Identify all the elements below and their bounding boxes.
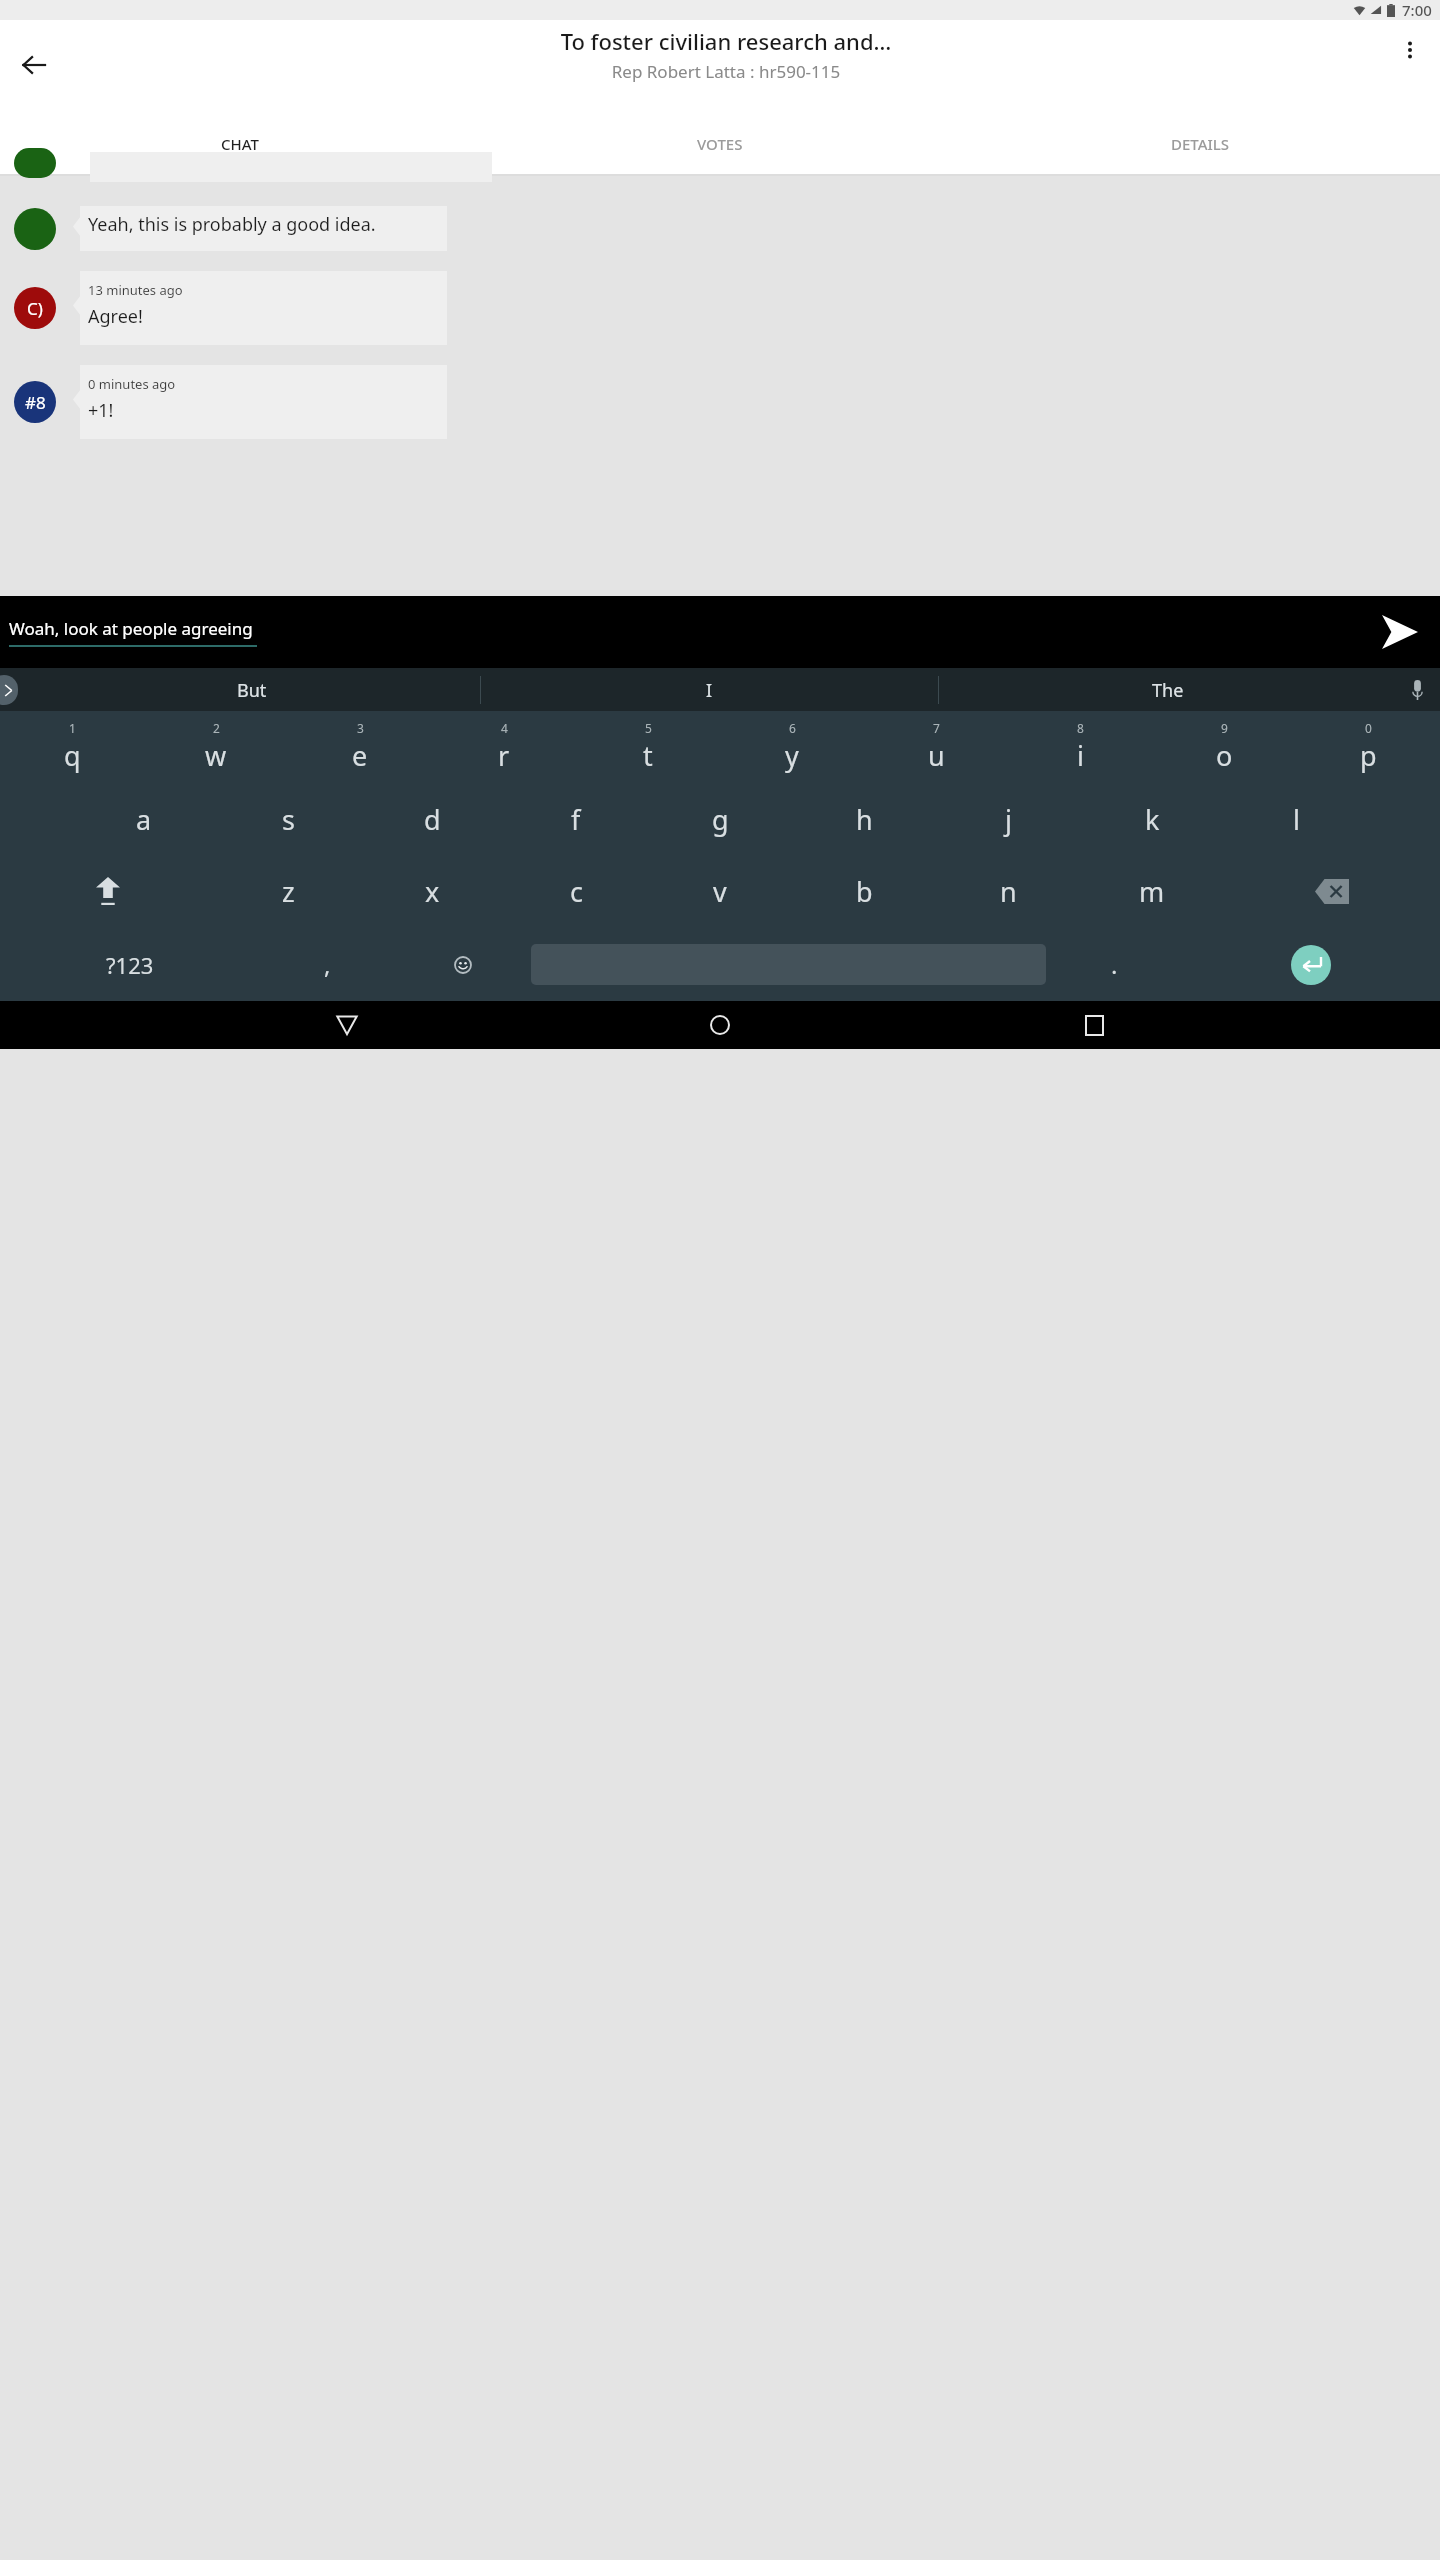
button[interactable]: v bbox=[648, 855, 792, 928]
button[interactable]: Backspace bbox=[1224, 855, 1440, 928]
staticText: e bbox=[352, 737, 368, 774]
button[interactable]: Back bbox=[320, 1001, 374, 1049]
button[interactable]: g bbox=[648, 783, 792, 855]
button[interactable]: 7 bbox=[864, 711, 1008, 783]
button[interactable]: 9 bbox=[1152, 711, 1296, 783]
button[interactable]: 3 bbox=[288, 711, 432, 783]
button[interactable]: Expand suggestions bbox=[0, 675, 18, 705]
button[interactable]: n bbox=[936, 855, 1080, 928]
staticText: 5 bbox=[645, 720, 652, 736]
button[interactable]: Yeah, this is probably a good idea. bbox=[0, 206, 1440, 251]
button[interactable]: Back bbox=[6, 37, 62, 93]
button[interactable]: x bbox=[360, 855, 504, 928]
staticText: CHAT bbox=[221, 134, 259, 154]
button[interactable]: d bbox=[360, 783, 504, 855]
staticText: #8 bbox=[25, 391, 46, 414]
staticText: q bbox=[64, 737, 81, 774]
staticText: 0 minutes ago bbox=[88, 375, 176, 393]
staticText: d bbox=[424, 801, 441, 838]
button[interactable]: The bbox=[939, 678, 1396, 703]
button[interactable]: 2 bbox=[144, 711, 288, 783]
button[interactable]: 4 bbox=[432, 711, 576, 783]
staticText: Woah, look at people agreeing on somethi… bbox=[9, 617, 257, 640]
button[interactable]: f bbox=[504, 783, 648, 855]
button[interactable]: l bbox=[1224, 783, 1368, 855]
button[interactable]: m bbox=[1080, 855, 1224, 928]
button[interactable]: Emoji bbox=[395, 928, 531, 1001]
staticText: 1 bbox=[69, 720, 76, 736]
button[interactable]: ?123 bbox=[0, 928, 259, 1001]
staticText: k bbox=[1145, 801, 1160, 838]
button[interactable]: c bbox=[504, 855, 648, 928]
staticText: y bbox=[785, 737, 799, 774]
button[interactable]: CHAT bbox=[0, 134, 480, 154]
button[interactable]: Voice input bbox=[1400, 673, 1434, 707]
staticText: g bbox=[712, 801, 729, 838]
staticText: 7 bbox=[933, 720, 940, 736]
button[interactable]: 8 bbox=[1008, 711, 1152, 783]
button[interactable]: Recents bbox=[1067, 1001, 1121, 1049]
staticText: t bbox=[643, 737, 653, 774]
button[interactable]: s bbox=[216, 783, 360, 855]
button[interactable]: j bbox=[936, 783, 1080, 855]
staticText: 9 bbox=[1221, 720, 1228, 736]
staticText: 8 bbox=[1077, 720, 1084, 736]
button[interactable]: 5 bbox=[576, 711, 720, 783]
button[interactable]: Shift bbox=[0, 855, 216, 928]
staticText: j bbox=[1005, 801, 1012, 838]
button[interactable]: C) bbox=[0, 271, 1440, 345]
staticText: 4 bbox=[501, 720, 508, 736]
staticText: b bbox=[856, 873, 873, 910]
button[interactable]: a bbox=[72, 783, 216, 855]
staticText: But bbox=[237, 678, 267, 703]
staticText: m bbox=[1139, 873, 1165, 910]
button[interactable]: 0 bbox=[1296, 711, 1440, 783]
staticText: a bbox=[136, 801, 152, 838]
staticText: f bbox=[571, 801, 581, 838]
button[interactable]: 6 bbox=[720, 711, 864, 783]
staticText: 0 bbox=[1365, 720, 1372, 736]
staticText: z bbox=[282, 873, 295, 910]
staticText: , bbox=[324, 948, 331, 981]
staticText: l bbox=[1293, 801, 1300, 838]
staticText: DETAILS bbox=[1171, 134, 1230, 154]
button[interactable]: DETAILS bbox=[960, 134, 1440, 154]
staticText: 2 bbox=[213, 720, 220, 736]
button[interactable]: But bbox=[24, 678, 480, 703]
button[interactable]: h bbox=[792, 783, 936, 855]
button[interactable]: Enter bbox=[1182, 928, 1440, 1001]
staticText: r bbox=[498, 737, 510, 774]
staticText: C) bbox=[27, 297, 43, 320]
staticText: 6 bbox=[789, 720, 796, 736]
button[interactable]: 1 bbox=[0, 711, 144, 783]
staticText: 7:00 bbox=[1402, 0, 1432, 20]
button[interactable]: VOTES bbox=[480, 134, 960, 154]
button[interactable]: z bbox=[216, 855, 360, 928]
button[interactable]: I bbox=[481, 678, 938, 703]
button[interactable]: More options bbox=[1384, 24, 1436, 76]
button[interactable]: b bbox=[792, 855, 936, 928]
button[interactable]: Send bbox=[1372, 604, 1428, 660]
staticText: o bbox=[1216, 737, 1233, 774]
button[interactable]: Home bbox=[693, 1001, 747, 1049]
staticText: i bbox=[1077, 737, 1084, 774]
staticText: VOTES bbox=[697, 134, 743, 154]
staticText: c bbox=[570, 873, 583, 910]
staticText: ?123 bbox=[106, 950, 154, 980]
staticText: 13 minutes ago bbox=[88, 281, 183, 299]
button[interactable]: k bbox=[1080, 783, 1224, 855]
staticText: h bbox=[856, 801, 873, 838]
staticText: w bbox=[205, 737, 227, 774]
button[interactable]: , bbox=[259, 928, 395, 1001]
staticText: The bbox=[1152, 678, 1184, 703]
button[interactable]: . bbox=[1046, 928, 1182, 1001]
staticText: u bbox=[928, 737, 945, 774]
staticText: Yeah, this is probably a good idea. bbox=[88, 212, 376, 237]
staticText: . bbox=[1111, 948, 1118, 981]
staticText: n bbox=[1000, 873, 1017, 910]
staticText: +1! bbox=[88, 398, 114, 423]
button[interactable]: #8 bbox=[0, 365, 1440, 439]
staticText: 3 bbox=[357, 720, 364, 736]
staticText: s bbox=[282, 801, 295, 838]
